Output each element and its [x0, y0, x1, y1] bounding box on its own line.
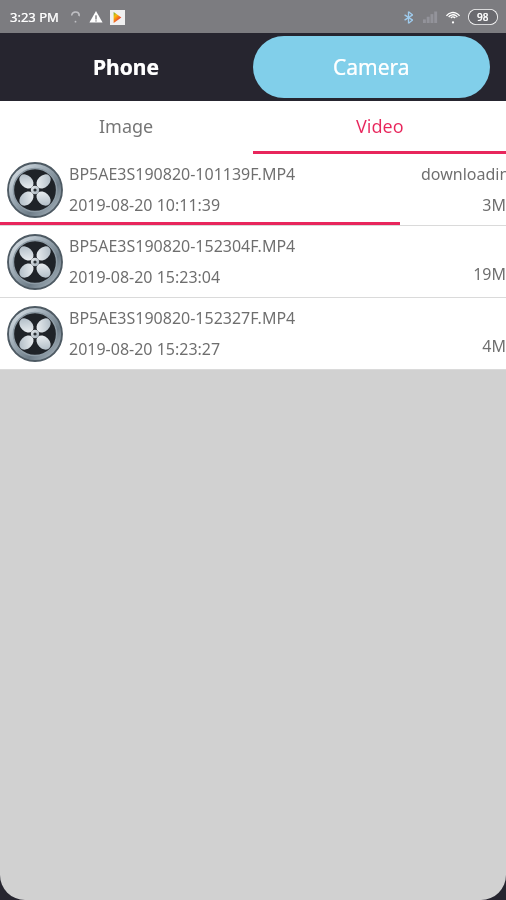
staticText: 3M [482, 194, 506, 216]
staticText: BP5AE3S190820-152304F.MP4 [69, 235, 296, 257]
button[interactable]: Phone [0, 33, 253, 101]
staticText: 19M [473, 263, 506, 285]
staticText: 2019-08-20 10:11:39 [69, 194, 221, 216]
staticText: 2019-08-20 15:23:04 [69, 266, 221, 288]
staticText: 4M [482, 335, 506, 357]
button[interactable]: BP5AE3S190820-101139F.MP4 [0, 154, 506, 225]
staticText: downloading [421, 163, 506, 185]
button[interactable]: BP5AE3S190820-152304F.MP4 [0, 226, 506, 297]
staticText: 3:23 PM [10, 8, 59, 26]
staticText: Video [356, 114, 404, 139]
button[interactable]: Camera [253, 36, 490, 98]
button[interactable]: Image [0, 101, 253, 151]
button[interactable]: BP5AE3S190820-152327F.MP4 [0, 298, 506, 369]
staticText: 98 [477, 10, 489, 24]
staticText: BP5AE3S190820-101139F.MP4 [69, 163, 296, 185]
staticText: 2019-08-20 15:23:27 [69, 338, 221, 360]
staticText: Image [99, 114, 154, 139]
button[interactable]: Video [253, 101, 506, 151]
staticText: Phone [93, 53, 160, 82]
staticText: Camera [333, 53, 410, 82]
staticText: BP5AE3S190820-152327F.MP4 [69, 307, 296, 329]
